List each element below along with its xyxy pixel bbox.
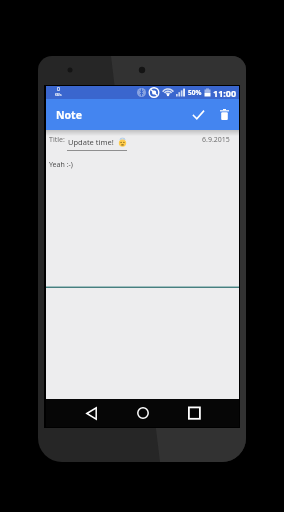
staticText: 6.9.2015 xyxy=(202,135,230,145)
button[interactable] xyxy=(168,399,219,427)
button[interactable]: Update time! xyxy=(68,137,127,147)
staticText: Update time! xyxy=(68,137,116,147)
button[interactable] xyxy=(66,399,117,427)
staticText: Title: xyxy=(49,135,65,145)
staticText: 0 xyxy=(57,86,60,93)
staticText: KB/s xyxy=(55,93,62,97)
button[interactable] xyxy=(117,399,168,427)
button[interactable] xyxy=(185,99,211,130)
staticText: Note xyxy=(56,108,82,122)
button[interactable] xyxy=(211,99,237,130)
staticText: Yeah :-) xyxy=(49,160,73,170)
staticText: 11:00 xyxy=(213,87,237,99)
staticText: 50% xyxy=(188,88,202,97)
